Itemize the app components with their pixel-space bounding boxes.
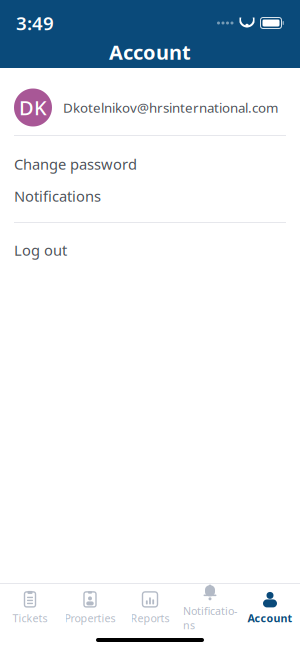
- button[interactable]: Change password: [0, 148, 300, 180]
- button[interactable]: Reports: [120, 590, 180, 626]
- button[interactable]: Tickets: [0, 590, 60, 626]
- staticText: Tickets: [12, 611, 47, 625]
- button[interactable]: Properties: [60, 590, 120, 626]
- staticText: Notifications: [14, 186, 101, 206]
- staticText: Change password: [14, 154, 137, 174]
- button[interactable]: Log out: [0, 234, 300, 266]
- button[interactable]: Notifications: [0, 180, 300, 212]
- staticText: Properties: [64, 611, 115, 625]
- button[interactable]: Notifications: [180, 590, 240, 626]
- staticText: Log out: [14, 240, 67, 260]
- staticText: Notifications: [183, 604, 237, 632]
- staticText: Dkotelnikov@hrsinternational.com: [63, 99, 278, 116]
- staticText: Reports: [130, 611, 169, 625]
- staticText: DK: [19, 94, 47, 121]
- button[interactable]: Account: [240, 590, 300, 626]
- staticText: 3:49: [16, 11, 54, 35]
- staticText: Account: [109, 39, 191, 65]
- staticText: Account: [247, 611, 292, 625]
